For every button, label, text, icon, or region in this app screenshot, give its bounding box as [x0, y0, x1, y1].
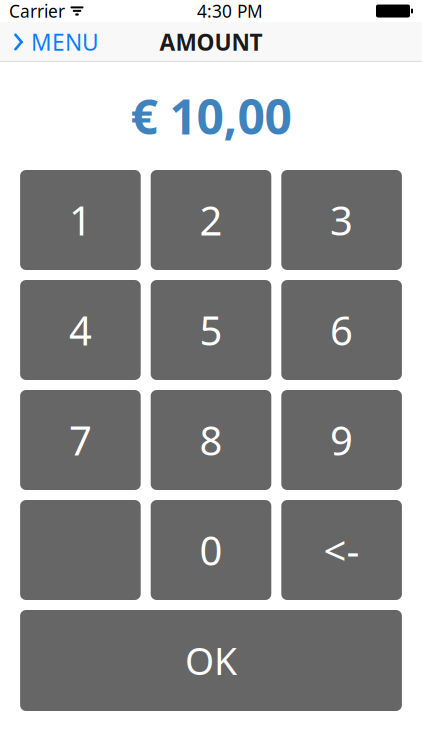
staticText: 6 [330, 303, 353, 356]
staticText: <- [324, 523, 360, 576]
staticText: Carrier [9, 0, 65, 22]
button[interactable]: 5 [151, 280, 271, 380]
staticText: 5 [199, 303, 222, 356]
staticText: OK [185, 636, 237, 685]
button[interactable]: 7 [20, 390, 141, 490]
staticText: MENU [31, 27, 99, 57]
button[interactable]: 1 [20, 170, 141, 270]
button[interactable]: 8 [151, 390, 271, 490]
button[interactable]: 9 [281, 390, 402, 490]
staticText: 3 [330, 193, 353, 246]
staticText: 0 [199, 523, 222, 576]
staticText: 4 [69, 303, 92, 356]
staticText: AMOUNT [159, 27, 262, 57]
button[interactable]: 4 [20, 280, 141, 380]
button[interactable]: OK [20, 610, 402, 711]
button[interactable]: <- [281, 500, 402, 600]
button[interactable]: 6 [281, 280, 402, 380]
button[interactable]: MENU [0, 22, 109, 62]
staticText: 8 [199, 413, 222, 466]
staticText: 4:30 PM [197, 0, 263, 22]
staticText: 1 [69, 193, 92, 246]
staticText: 7 [69, 413, 92, 466]
staticText: € 10,00 [130, 84, 291, 148]
button[interactable]: 3 [281, 170, 402, 270]
button[interactable]: 0 [151, 500, 271, 600]
staticText: 2 [199, 193, 222, 246]
staticText: 9 [330, 413, 353, 466]
button[interactable]: 2 [151, 170, 271, 270]
button[interactable]: Blank key [20, 500, 141, 600]
